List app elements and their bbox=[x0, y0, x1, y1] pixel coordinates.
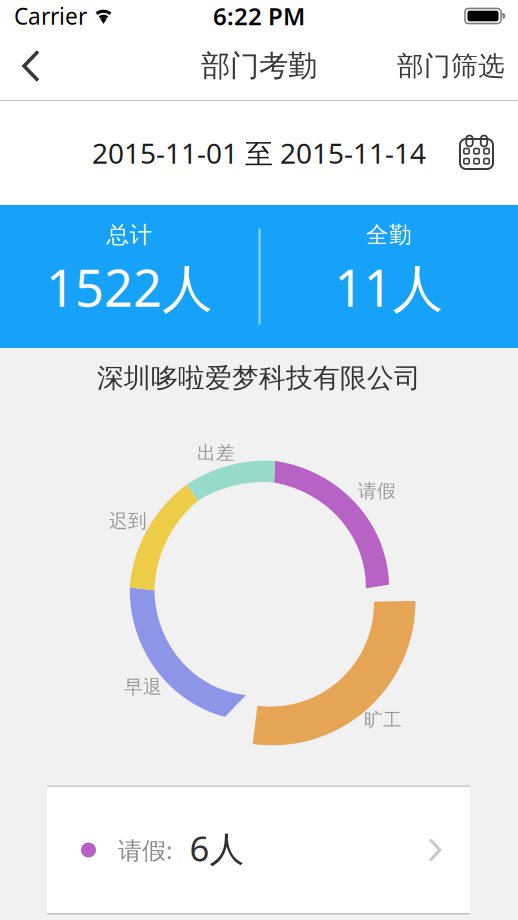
staticText: 6:22 PM bbox=[213, 0, 305, 32]
staticText: 早退 bbox=[124, 675, 162, 698]
staticText: 1522人 bbox=[46, 253, 213, 321]
staticText: 部门筛选 bbox=[397, 50, 505, 82]
button[interactable]: 部门筛选 bbox=[397, 32, 518, 100]
staticText: 迟到 bbox=[109, 509, 147, 532]
button[interactable]: 选择日期范围 bbox=[0, 101, 518, 205]
staticText: 2015-11-01 至 2015-11-14 bbox=[92, 134, 426, 172]
staticText: 请假: bbox=[118, 834, 172, 866]
staticText: 6人 bbox=[189, 825, 244, 871]
staticText: 总计 bbox=[106, 221, 152, 249]
staticText: 部门考勤 bbox=[201, 48, 317, 84]
staticText: 出差 bbox=[197, 441, 235, 464]
staticText: 11人 bbox=[334, 253, 443, 321]
staticText: 深圳哆啦爱梦科技有限公司 bbox=[97, 362, 421, 394]
staticText: 请假 bbox=[358, 479, 396, 502]
button[interactable]: Back bbox=[0, 32, 55, 100]
staticText: 旷工 bbox=[364, 708, 402, 731]
button[interactable]: 请假: bbox=[47, 785, 470, 914]
staticText: Carrier bbox=[14, 1, 87, 31]
staticText: 全勤 bbox=[366, 221, 412, 249]
